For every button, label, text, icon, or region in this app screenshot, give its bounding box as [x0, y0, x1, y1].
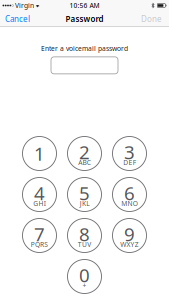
button[interactable]: 9 [112, 218, 146, 252]
button[interactable]: 4 [22, 177, 56, 211]
button[interactable]: 5 [67, 177, 101, 211]
button[interactable]: 6 [112, 177, 146, 211]
staticText: 5 [79, 181, 90, 205]
button[interactable]: 7 [22, 218, 56, 252]
staticText: Done [141, 14, 162, 24]
staticText: ABC [78, 158, 91, 167]
button[interactable]: 0 [67, 259, 101, 293]
staticText: WXYZ [120, 240, 139, 249]
staticText: Enter a voicemail password [41, 44, 128, 53]
staticText: PQRS [31, 240, 48, 249]
staticText: 4 [34, 181, 45, 205]
staticText: 8 [79, 222, 90, 246]
staticText: 0 [79, 263, 90, 287]
staticText: 3 [124, 140, 135, 164]
button[interactable]: 8 [67, 218, 101, 252]
staticText: JKL [80, 199, 89, 208]
staticText: 10:56 AM [69, 1, 99, 10]
staticText: 2 [79, 140, 90, 164]
staticText: MNO [121, 199, 138, 208]
staticText: Cancel [5, 14, 30, 24]
button[interactable]: 1 [22, 136, 56, 170]
staticText: TUV [78, 240, 91, 249]
staticText: GHI [33, 199, 46, 208]
button[interactable]: Cancel [0, 11, 35, 27]
staticText: 9 [124, 222, 135, 246]
staticText: Virgin [15, 1, 34, 10]
button[interactable]: Done [136, 11, 169, 27]
staticText: Password [65, 14, 103, 24]
button[interactable]: 3 [112, 136, 146, 170]
staticText: + [82, 281, 86, 290]
staticText: 6 [124, 181, 135, 205]
staticText: 7 [34, 222, 45, 246]
staticText: DEF [123, 158, 136, 167]
button[interactable]: 2 [67, 136, 101, 170]
staticText: 1 [34, 141, 45, 166]
